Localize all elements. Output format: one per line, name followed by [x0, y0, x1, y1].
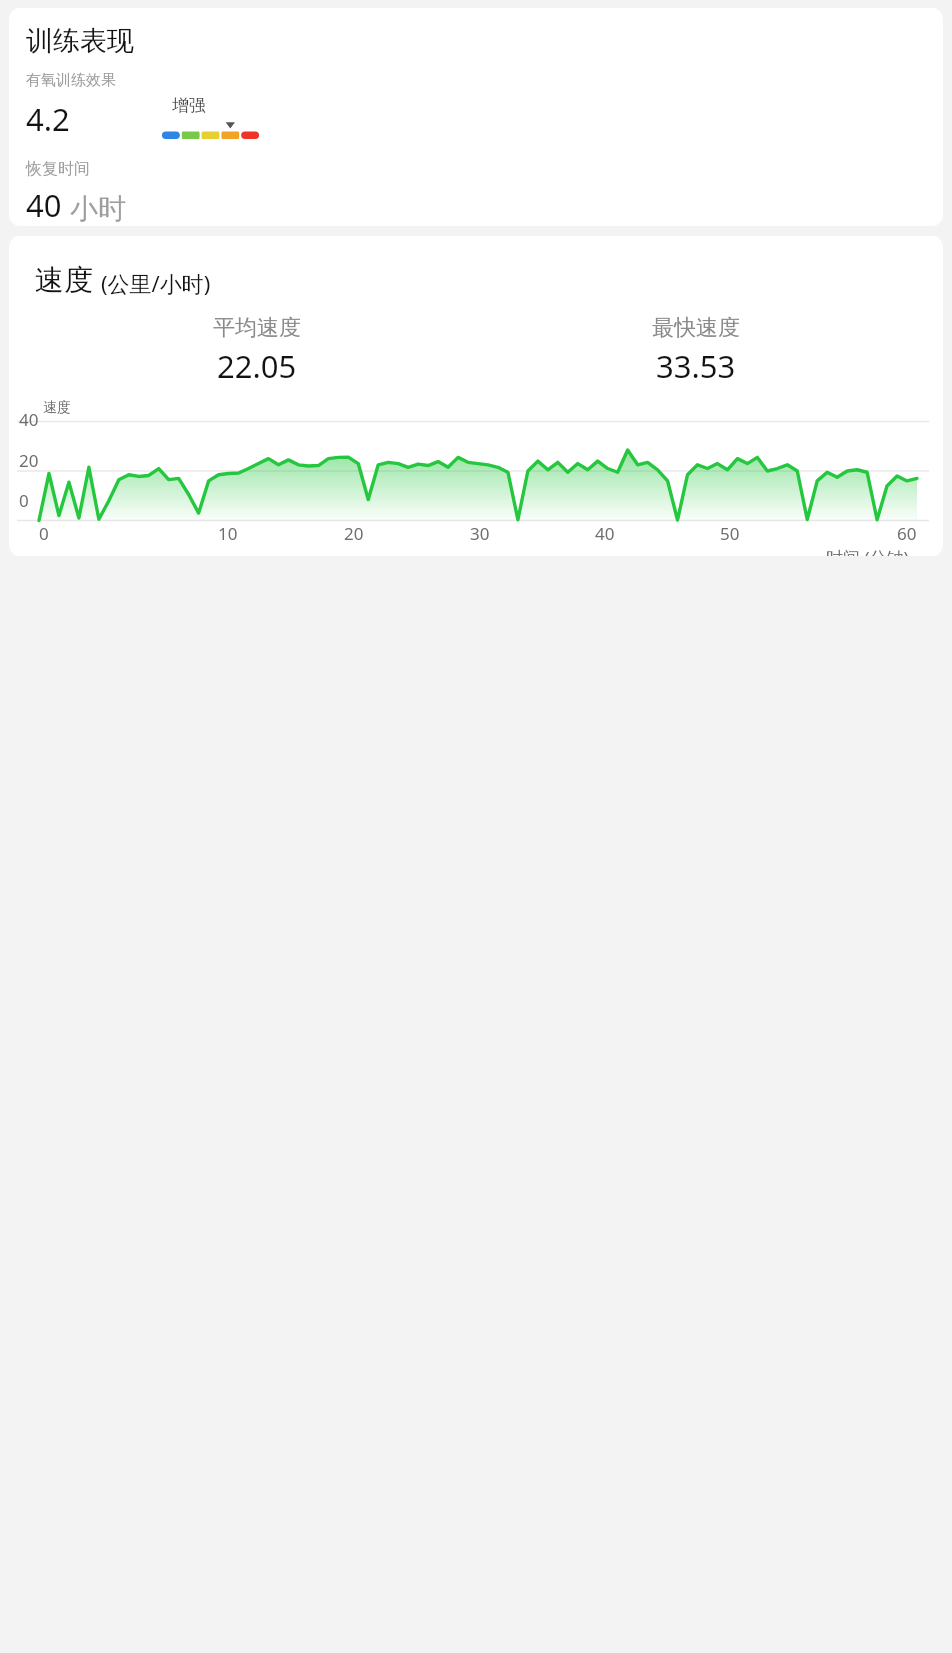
staticText: 22.05 — [217, 345, 297, 387]
button[interactable]: 最快速度 — [476, 314, 915, 387]
staticText: 20 — [19, 449, 39, 472]
staticText: (公里/小时) — [101, 268, 211, 298]
staticText: 50 — [720, 522, 740, 545]
staticText: 40 — [595, 522, 615, 545]
staticText: 恢复时间 — [26, 159, 90, 179]
staticText: 40 — [19, 408, 39, 431]
staticText: 增强 — [172, 95, 206, 116]
staticText: 时间 (分钟) — [826, 546, 909, 556]
staticText: 小时 — [70, 191, 126, 226]
staticText: 平均速度 — [213, 314, 301, 342]
button[interactable]: 速度 — [9, 236, 943, 556]
staticText: 40 — [26, 184, 62, 226]
button[interactable]: 平均速度 — [37, 314, 476, 387]
staticText: 0 — [19, 489, 29, 512]
staticText: 训练表现 — [26, 24, 134, 58]
staticText: 33.53 — [656, 345, 736, 387]
staticText: 4.2 — [26, 98, 70, 140]
staticText: 20 — [344, 522, 364, 545]
staticText: 0 — [39, 522, 49, 545]
staticText: 10 — [218, 522, 238, 545]
staticText: 速度 — [43, 399, 71, 417]
staticText: 有氧训练效果 — [26, 71, 116, 90]
staticText: 速度 — [35, 262, 93, 299]
staticText: 60 — [897, 522, 917, 545]
button[interactable]: 训练表现 — [9, 8, 943, 226]
staticText: 30 — [470, 522, 490, 545]
staticText: 最快速度 — [652, 314, 740, 342]
